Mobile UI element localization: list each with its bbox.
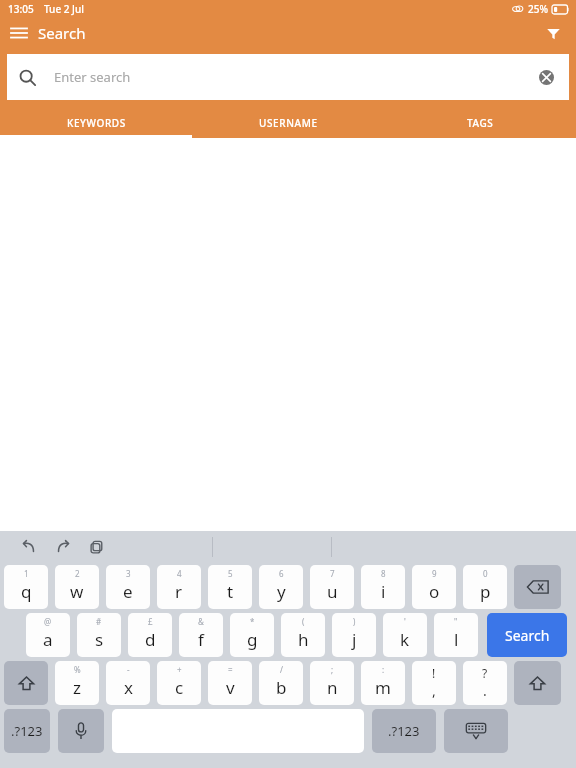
- button[interactable]: Search: [487, 613, 567, 657]
- staticText: k: [400, 628, 410, 651]
- button[interactable]: Open navigation menu: [0, 18, 38, 48]
- staticText: n: [327, 676, 338, 699]
- staticText: Search: [38, 23, 86, 43]
- button[interactable]: &: [179, 613, 223, 657]
- button[interactable]: 0: [463, 565, 507, 609]
- staticText: 4: [177, 568, 182, 579]
- button[interactable]: .?123: [372, 709, 436, 753]
- staticText: .?123: [11, 722, 43, 740]
- button[interactable]: *: [230, 613, 274, 657]
- button[interactable]: 8: [361, 565, 405, 609]
- button[interactable]: £: [128, 613, 172, 657]
- staticText: q: [21, 580, 32, 603]
- staticText: p: [480, 580, 491, 603]
- staticText: £: [148, 616, 153, 627]
- button[interactable]: Filter: [530, 18, 576, 48]
- staticText: r: [175, 580, 183, 603]
- staticText: %: [74, 664, 81, 675]
- button[interactable]: !: [412, 661, 456, 705]
- staticText: TAGS: [467, 116, 494, 130]
- button[interactable]: Paste: [82, 533, 112, 561]
- button[interactable]: ": [434, 613, 478, 657]
- button[interactable]: Shift: [4, 661, 48, 705]
- staticText: 7: [330, 568, 335, 579]
- staticText: a: [43, 628, 53, 651]
- button[interactable]: KEYWORDS: [0, 105, 192, 138]
- staticText: (: [302, 616, 305, 627]
- staticText: u: [327, 580, 338, 603]
- staticText: c: [175, 676, 184, 699]
- button[interactable]: 6: [259, 565, 303, 609]
- button[interactable]: Enter search: [7, 54, 569, 100]
- staticText: ): [353, 616, 356, 627]
- button[interactable]: TAGS: [384, 105, 576, 138]
- staticText: g: [247, 628, 258, 651]
- staticText: 1: [24, 568, 29, 579]
- button[interactable]: Voice input: [58, 709, 104, 753]
- staticText: b: [276, 676, 287, 699]
- staticText: w: [70, 580, 84, 603]
- button[interactable]: @: [26, 613, 70, 657]
- staticText: .?123: [388, 722, 420, 740]
- button[interactable]: Undo: [14, 533, 44, 561]
- button[interactable]: -: [106, 661, 150, 705]
- staticText: v: [226, 676, 235, 699]
- staticText: i: [381, 580, 386, 603]
- button[interactable]: Hide keyboard: [444, 709, 508, 753]
- button[interactable]: ;: [310, 661, 354, 705]
- button[interactable]: 3: [106, 565, 150, 609]
- staticText: #: [96, 616, 102, 627]
- button[interactable]: =: [208, 661, 252, 705]
- button[interactable]: +: [157, 661, 201, 705]
- button[interactable]: Clear search: [535, 66, 557, 88]
- staticText: ': [404, 616, 406, 627]
- staticText: z: [73, 676, 81, 699]
- staticText: ?: [482, 665, 488, 681]
- staticText: .: [483, 681, 487, 700]
- staticText: 25%: [528, 2, 548, 16]
- button[interactable]: Shift: [514, 661, 561, 705]
- button[interactable]: 1: [4, 565, 48, 609]
- button[interactable]: Backspace: [514, 565, 561, 609]
- staticText: f: [198, 628, 204, 651]
- staticText: o: [429, 580, 440, 603]
- staticText: 5: [228, 568, 233, 579]
- staticText: 9: [432, 568, 437, 579]
- staticText: Search: [505, 626, 550, 645]
- staticText: :: [382, 664, 385, 675]
- staticText: ;: [331, 664, 334, 675]
- staticText: KEYWORDS: [67, 116, 126, 130]
- staticText: Enter search: [54, 68, 131, 86]
- button[interactable]: 2: [55, 565, 99, 609]
- staticText: 0: [483, 568, 488, 579]
- staticText: @: [44, 616, 52, 627]
- staticText: =: [228, 664, 233, 675]
- button[interactable]: ': [383, 613, 427, 657]
- button[interactable]: ): [332, 613, 376, 657]
- button[interactable]: (: [281, 613, 325, 657]
- staticText: 8: [381, 568, 386, 579]
- button[interactable]: 7: [310, 565, 354, 609]
- button[interactable]: #: [77, 613, 121, 657]
- staticText: d: [145, 628, 156, 651]
- button[interactable]: ?: [463, 661, 507, 705]
- button[interactable]: 9: [412, 565, 456, 609]
- button[interactable]: .?123: [4, 709, 50, 753]
- staticText: *: [250, 616, 255, 627]
- staticText: e: [123, 580, 133, 603]
- button[interactable]: :: [361, 661, 405, 705]
- button[interactable]: 4: [157, 565, 201, 609]
- staticText: t: [227, 580, 234, 603]
- button[interactable]: 5: [208, 565, 252, 609]
- button[interactable]: %: [55, 661, 99, 705]
- staticText: 13:05: [8, 2, 34, 16]
- staticText: x: [124, 676, 133, 699]
- staticText: m: [375, 676, 391, 699]
- button[interactable]: USERNAME: [192, 105, 384, 138]
- button[interactable]: /: [259, 661, 303, 705]
- staticText: +: [177, 664, 182, 675]
- button[interactable]: Redo: [48, 533, 78, 561]
- staticText: ": [454, 616, 458, 627]
- staticText: &: [198, 616, 204, 627]
